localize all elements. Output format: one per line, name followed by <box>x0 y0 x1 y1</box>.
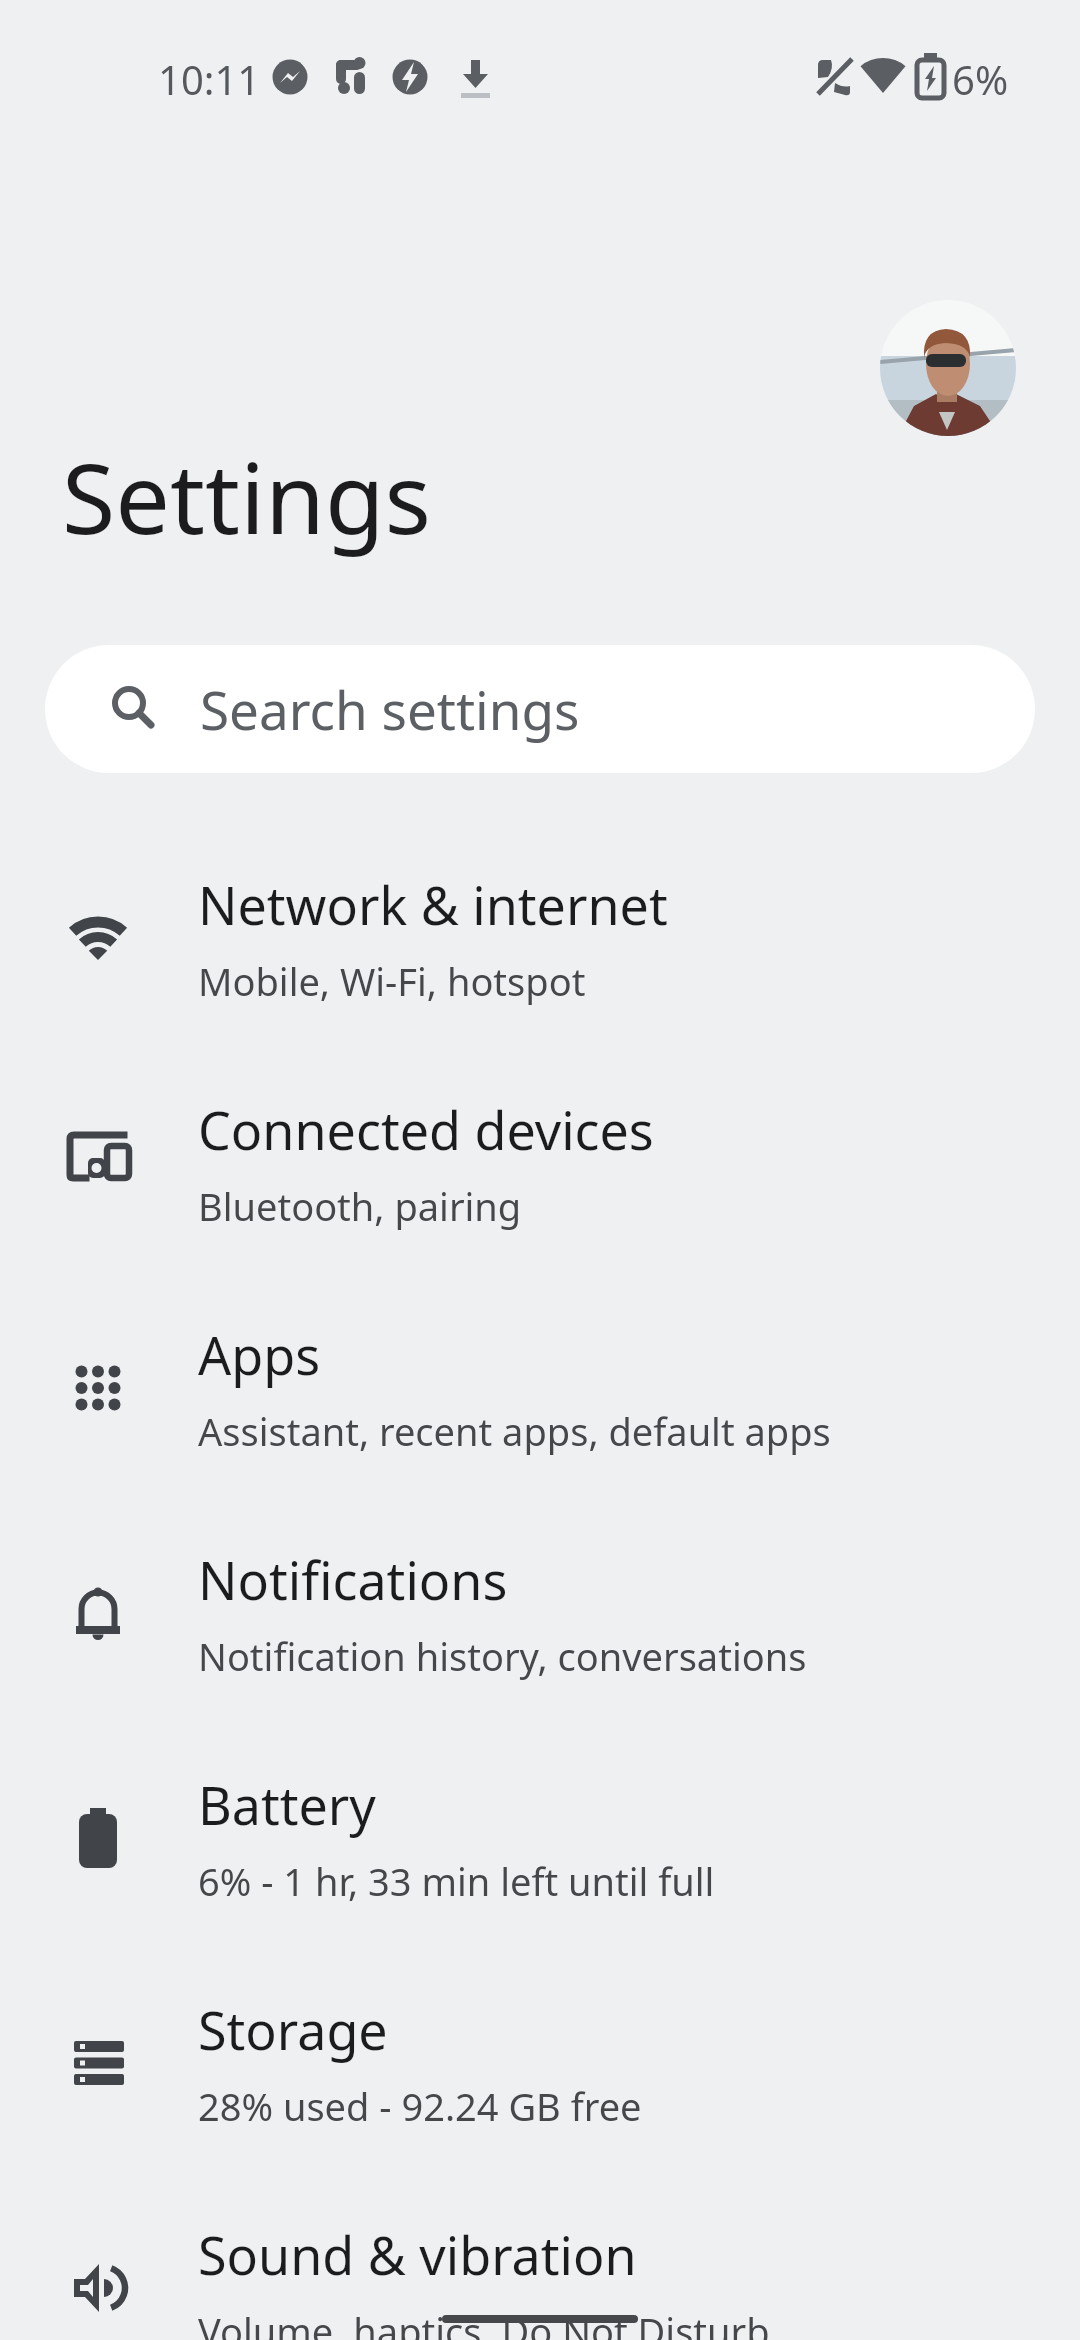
staticText: 6% - 1 hr, 33 min left until full <box>198 1855 715 1907</box>
staticText: Volume, haptics, Do Not Disturb <box>198 2305 770 2340</box>
staticText: Apps <box>198 1319 321 1390</box>
staticText: Network & internet <box>198 869 668 940</box>
button[interactable]: Battery <box>0 1725 1080 1950</box>
staticText: Connected devices <box>198 1094 654 1165</box>
staticText: Search settings <box>200 673 580 745</box>
button[interactable]: Notifications <box>0 1500 1080 1725</box>
button[interactable]: Storage <box>0 1950 1080 2175</box>
button[interactable]: Apps <box>0 1275 1080 1500</box>
button[interactable]: Search settings <box>45 645 1035 773</box>
staticText: Sound & vibration <box>198 2219 637 2290</box>
staticText: Notifications <box>198 1544 508 1615</box>
button[interactable]: Connected devices <box>0 1050 1080 1275</box>
staticText: Mobile, Wi-Fi, hotspot <box>198 955 586 1007</box>
button[interactable]: Network & internet <box>0 825 1080 1050</box>
staticText: 28% used - 92.24 GB free <box>198 2080 642 2132</box>
staticText: Settings <box>62 430 432 562</box>
staticText: Assistant, recent apps, default apps <box>198 1405 831 1457</box>
button[interactable]: Sound & vibration <box>0 2175 1080 2340</box>
staticText: Bluetooth, pairing <box>198 1180 522 1232</box>
staticText: 10:11 <box>158 52 261 106</box>
staticText: Battery <box>198 1769 376 1840</box>
button[interactable] <box>880 300 1016 436</box>
staticText: Storage <box>198 1994 388 2065</box>
staticText: Notification history, conversations <box>198 1630 807 1682</box>
staticText: 6% <box>952 52 1009 106</box>
